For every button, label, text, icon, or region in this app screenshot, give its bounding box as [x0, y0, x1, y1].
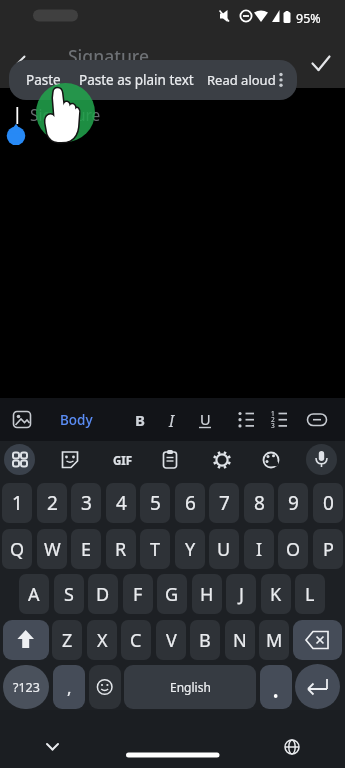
button[interactable]: G — [157, 574, 187, 614]
staticText: , — [67, 676, 72, 699]
button[interactable]: Y — [175, 529, 205, 569]
staticText: N — [233, 628, 247, 653]
button[interactable]: C — [121, 620, 151, 660]
button[interactable]: English — [124, 665, 256, 709]
button[interactable]: D — [88, 574, 118, 614]
staticText: 3 — [271, 421, 275, 430]
button[interactable] — [303, 406, 331, 434]
button[interactable]: N — [225, 620, 255, 660]
button[interactable] — [156, 445, 185, 474]
staticText: J — [239, 582, 244, 607]
button[interactable]: ?123 — [3, 665, 49, 709]
staticText: G — [165, 582, 179, 607]
staticText: Signature — [30, 104, 101, 125]
staticText: W — [44, 537, 61, 562]
staticText: 0 — [323, 490, 334, 516]
button[interactable]: I — [164, 410, 180, 431]
button[interactable]: K — [261, 574, 291, 614]
button[interactable]: R — [106, 529, 136, 569]
staticText: S — [64, 582, 74, 607]
button[interactable]: 9 — [278, 483, 308, 523]
staticText: GIF — [113, 453, 133, 469]
button[interactable]: S — [54, 574, 84, 614]
button[interactable]: Body — [56, 411, 96, 429]
button[interactable]: M — [259, 620, 289, 660]
staticText: Signature — [68, 44, 149, 68]
button[interactable]: J — [226, 574, 256, 614]
button[interactable]: 2 — [37, 483, 67, 523]
button[interactable] — [3, 620, 49, 660]
button[interactable]: Z — [52, 620, 82, 660]
button[interactable]: 5 — [140, 483, 170, 523]
button[interactable] — [306, 444, 337, 475]
button[interactable] — [0, 398, 345, 441]
staticText: Y — [185, 537, 196, 562]
button[interactable] — [56, 445, 85, 474]
button[interactable]: 8 — [244, 483, 274, 523]
button[interactable]: GIF — [110, 453, 136, 469]
button[interactable]: , — [53, 665, 85, 709]
button[interactable]: 0 — [313, 483, 343, 523]
staticText: P — [323, 537, 334, 562]
staticText: R — [115, 537, 127, 562]
button[interactable] — [293, 620, 342, 660]
button[interactable] — [305, 47, 337, 79]
staticText: Paste as plain text — [79, 71, 194, 89]
button[interactable] — [260, 665, 292, 709]
staticText: K — [270, 582, 282, 607]
button[interactable]: 7 — [209, 483, 239, 523]
button[interactable]: B — [190, 620, 220, 660]
button[interactable]: X — [87, 620, 117, 660]
button[interactable]: B — [132, 410, 148, 430]
button[interactable] — [264, 406, 292, 434]
button[interactable] — [295, 664, 340, 709]
staticText: English — [170, 679, 211, 695]
staticText: F — [133, 582, 143, 607]
button[interactable]: I — [244, 529, 274, 569]
button[interactable] — [278, 733, 306, 761]
staticText: C — [130, 628, 142, 653]
button[interactable] — [8, 406, 36, 434]
button[interactable]: 1 — [2, 483, 32, 523]
button[interactable]: 6 — [175, 483, 205, 523]
staticText: 1 — [12, 490, 23, 516]
button[interactable] — [256, 445, 285, 474]
button[interactable]: U — [197, 409, 213, 429]
button[interactable]: Q — [2, 529, 32, 569]
button[interactable]: O — [278, 529, 308, 569]
button[interactable]: L — [295, 574, 325, 614]
button[interactable]: T — [140, 529, 170, 569]
staticText: E — [81, 537, 92, 562]
button[interactable]: 3 — [71, 483, 101, 523]
staticText: 6 — [185, 490, 196, 516]
button[interactable] — [38, 733, 66, 761]
button[interactable]: W — [37, 529, 67, 569]
staticText: 1 — [271, 409, 275, 418]
button[interactable]: 4 — [106, 483, 136, 523]
button[interactable]: Paste as plain text — [78, 71, 194, 89]
button[interactable]: A — [19, 574, 49, 614]
staticText: Paste — [26, 71, 61, 89]
staticText: 2 — [271, 415, 275, 424]
button[interactable] — [89, 665, 121, 709]
button[interactable]: E — [71, 529, 101, 569]
button[interactable]: U — [209, 529, 239, 569]
button[interactable]: V — [156, 620, 186, 660]
staticText: D — [96, 582, 110, 607]
staticText: U — [200, 409, 211, 429]
button[interactable]: F — [123, 574, 153, 614]
staticText: V — [166, 628, 177, 653]
staticText: ?123 — [13, 679, 40, 696]
button[interactable] — [8, 48, 40, 80]
button[interactable] — [4, 444, 35, 475]
staticText: Body — [60, 411, 93, 429]
button[interactable] — [207, 445, 236, 474]
button[interactable] — [232, 406, 260, 434]
button[interactable]: P — [313, 529, 343, 569]
button[interactable]: Paste — [18, 71, 68, 89]
button[interactable] — [272, 64, 290, 96]
staticText: O — [286, 537, 301, 562]
staticText: A — [28, 582, 40, 607]
button[interactable]: Read aloud — [203, 71, 279, 89]
button[interactable]: H — [192, 574, 222, 614]
